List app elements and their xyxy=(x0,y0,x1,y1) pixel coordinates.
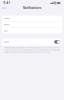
staticText: Back xyxy=(3,7,7,9)
button[interactable]: Repeat xyxy=(0,38,64,45)
staticText: Badges xyxy=(4,24,10,26)
staticText: Repeat xyxy=(4,41,9,43)
button[interactable]: Badges xyxy=(2,22,62,28)
button[interactable]: Alerts xyxy=(2,28,62,34)
staticText: Sounds xyxy=(4,18,10,19)
button[interactable]: Sounds xyxy=(2,15,62,21)
staticText: Notifications xyxy=(23,6,41,10)
button[interactable]: Back xyxy=(0,6,9,10)
staticText: Alerts xyxy=(4,30,8,32)
staticText: Notification settings apply to all alert… xyxy=(4,47,60,53)
staticText: 9:41 xyxy=(4,1,11,5)
